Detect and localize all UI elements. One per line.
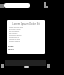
button[interactable]: Menu xyxy=(44,2,49,9)
staticText: lorem ipsum dolo sit amet conse tetur ad… xyxy=(9,26,23,42)
staticText: Lorem Ipsum Dolor Sit xyxy=(7,22,45,26)
staticText: Read more xyxy=(8,45,14,50)
button[interactable] xyxy=(4,3,30,8)
